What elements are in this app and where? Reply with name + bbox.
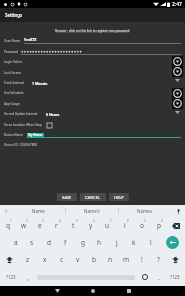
button[interactable]: t bbox=[65, 217, 82, 234]
button[interactable]: ?123 bbox=[165, 268, 185, 286]
staticText: v bbox=[76, 255, 80, 264]
staticText: Device Name bbox=[4, 133, 24, 137]
staticText: 4 bbox=[59, 219, 61, 223]
staticText: g bbox=[81, 238, 85, 247]
button[interactable]: Back bbox=[39, 286, 75, 296]
staticText: Force Location When Stop bbox=[4, 123, 42, 127]
button[interactable]: q bbox=[0, 217, 16, 234]
button[interactable]: j bbox=[108, 234, 125, 251]
staticText: 8 bbox=[127, 219, 129, 223]
button[interactable]: Track Interval bbox=[0, 78, 185, 88]
staticText: ?123 bbox=[170, 274, 180, 280]
button[interactable]: App Usage bbox=[0, 99, 185, 109]
staticText: e bbox=[38, 221, 42, 230]
button[interactable]: b bbox=[86, 251, 102, 268]
button[interactable]: SAVE bbox=[57, 193, 77, 201]
button[interactable]: Device Name bbox=[0, 130, 185, 140]
button[interactable]: c bbox=[53, 251, 70, 268]
staticText: q bbox=[6, 221, 10, 230]
staticText: ? bbox=[157, 255, 160, 264]
button[interactable]: Home bbox=[75, 286, 111, 296]
staticText: 9 bbox=[144, 219, 146, 223]
button[interactable]: Enter bbox=[159, 234, 185, 251]
button[interactable]: n bbox=[102, 251, 118, 268]
button[interactable]: Lock Screen bbox=[0, 68, 185, 78]
staticText: f bbox=[64, 238, 67, 247]
button[interactable]: Use Schedule bbox=[0, 88, 185, 98]
button[interactable]: Names bbox=[118, 205, 171, 217]
button[interactable]: Shift bbox=[0, 251, 19, 268]
button[interactable]: Name's bbox=[65, 205, 118, 217]
button[interactable]: Dropdown option bbox=[173, 99, 182, 108]
staticText: Settings bbox=[5, 12, 23, 18]
button[interactable]: y bbox=[82, 217, 99, 234]
staticText: 2:47 bbox=[172, 1, 182, 8]
button[interactable]: Dropdown option bbox=[173, 89, 182, 98]
staticText: 2 bbox=[26, 219, 28, 223]
staticText: o bbox=[140, 221, 144, 230]
button[interactable]: Emoji bbox=[137, 268, 153, 286]
button[interactable]: Space bbox=[35, 268, 137, 286]
button[interactable]: r bbox=[48, 217, 65, 234]
button[interactable]: w bbox=[16, 217, 32, 234]
button[interactable]: Force Location When Stop bbox=[0, 120, 185, 130]
staticText: x bbox=[43, 255, 47, 264]
button[interactable]: z bbox=[19, 251, 36, 268]
staticText: n bbox=[108, 255, 113, 264]
button[interactable]: h bbox=[91, 234, 108, 251]
staticText: t bbox=[72, 221, 75, 230]
button[interactable]: e bbox=[32, 217, 48, 234]
staticText: 6 Hours bbox=[46, 112, 60, 117]
staticText: My Name bbox=[28, 133, 43, 137]
button[interactable]: m bbox=[118, 251, 134, 268]
button[interactable]: . bbox=[153, 268, 165, 286]
button[interactable]: Backspace bbox=[167, 217, 185, 234]
button[interactable]: i bbox=[116, 217, 133, 234]
button[interactable]: ?123 bbox=[0, 268, 21, 286]
button[interactable]: v bbox=[70, 251, 86, 268]
button[interactable]: CANCEL bbox=[80, 193, 106, 201]
staticText: 1 Minute bbox=[32, 81, 48, 86]
staticText: s bbox=[30, 238, 34, 247]
button[interactable]: f bbox=[57, 234, 74, 251]
staticText: 5 bbox=[76, 219, 78, 223]
staticText: 1 bbox=[10, 219, 12, 223]
button[interactable]: Password bbox=[0, 47, 185, 57]
button[interactable]: User Name bbox=[0, 36, 185, 46]
button[interactable]: Dropdown option bbox=[173, 57, 182, 66]
button[interactable]: s bbox=[24, 234, 40, 251]
button[interactable]: k bbox=[125, 234, 142, 251]
button[interactable]: d bbox=[40, 234, 57, 251]
button[interactable]: Shift bbox=[166, 251, 185, 268]
staticText: User Name bbox=[4, 39, 21, 43]
button[interactable]: HELP bbox=[109, 193, 129, 201]
staticText: ?123 bbox=[6, 274, 16, 280]
staticText: ! bbox=[141, 255, 143, 264]
button[interactable]: o bbox=[133, 217, 150, 234]
staticText: c bbox=[60, 255, 64, 264]
button[interactable]: a bbox=[8, 234, 24, 251]
button[interactable]: Dropdown option bbox=[173, 67, 182, 76]
button[interactable]: g bbox=[74, 234, 91, 251]
staticText: j bbox=[116, 238, 118, 247]
button[interactable]: Recover : click on this link to register… bbox=[55, 29, 130, 33]
button[interactable]: u bbox=[99, 217, 116, 234]
button[interactable]: l bbox=[142, 234, 159, 251]
staticText: Device ID: 1234567890 bbox=[4, 143, 37, 147]
staticText: HELP bbox=[114, 195, 124, 200]
staticText: 3 bbox=[42, 219, 44, 223]
button[interactable]: Toggle Force Location When Stop bbox=[47, 123, 52, 128]
button[interactable]: ! bbox=[134, 251, 150, 268]
button[interactable]: p bbox=[150, 217, 167, 234]
button[interactable]: Recent apps bbox=[111, 286, 147, 296]
button[interactable]: Forced Update Interval bbox=[0, 109, 185, 119]
button[interactable]: More suggestions bbox=[0, 205, 12, 217]
button[interactable]: x bbox=[36, 251, 53, 268]
button[interactable]: Voice input bbox=[171, 205, 185, 217]
button[interactable]: Name bbox=[12, 205, 65, 217]
button[interactable]: ? bbox=[150, 251, 166, 268]
button[interactable]: , bbox=[21, 268, 35, 286]
staticText: App Usage bbox=[4, 102, 20, 106]
staticText: Use Schedule bbox=[4, 91, 24, 95]
button[interactable]: Login Token bbox=[0, 57, 185, 67]
